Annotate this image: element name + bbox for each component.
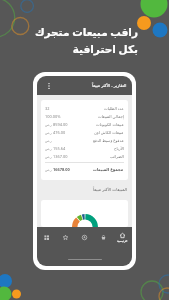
staticText: إجمالي المبيعات — [98, 114, 124, 119]
button[interactable]: ر.س — [45, 152, 124, 160]
staticText: ر.س — [45, 154, 52, 159]
staticText: عدد الطلبات — [104, 106, 124, 111]
button[interactable]: ر.س — [45, 128, 124, 136]
button[interactable]: ر.س — [45, 165, 124, 173]
staticText: مبيعات الكاش اون — [94, 130, 124, 135]
button[interactable]: Cart — [94, 227, 113, 247]
staticText: 100.00% — [45, 114, 61, 119]
button[interactable]: More options — [44, 81, 54, 91]
button[interactable]: Favorites — [56, 227, 75, 247]
staticText: الضرائب — [110, 154, 124, 159]
staticText: مجموع المبيعات — [93, 167, 124, 172]
staticText: ر.س — [45, 122, 52, 127]
staticText: 476.00 — [53, 130, 66, 135]
button[interactable]: Apps — [37, 227, 56, 247]
button[interactable]: Account — [75, 227, 94, 247]
staticText: مدفوع وسيط الدفع — [93, 138, 124, 143]
button[interactable]: ر.س — [45, 120, 124, 128]
staticText: 32 — [45, 106, 50, 111]
staticText: بكل احترافية — [72, 42, 138, 56]
staticText: راقب مبيعات متجرك — [34, 25, 138, 39]
staticText: الرئيسية — [117, 239, 128, 242]
staticText: 16678.00 — [53, 167, 70, 172]
staticText: التقارير - الأكثر مبيعاً — [92, 83, 127, 89]
button[interactable]: ر.س — [45, 144, 124, 152]
staticText: 155.64 — [53, 146, 66, 151]
button[interactable]: 100.00% — [45, 112, 124, 120]
staticText: الأرباح — [114, 146, 124, 151]
staticText: 1367.00 — [53, 154, 68, 159]
button[interactable]: 32 — [45, 104, 124, 112]
staticText: ر.س — [45, 138, 52, 143]
staticText: ر.س — [45, 146, 52, 151]
staticText: مبيعات الكوبونات — [96, 122, 124, 127]
staticText: 8594.00 — [53, 122, 68, 127]
staticText: المبيعات الأكثر مبيعاً — [41, 187, 127, 193]
staticText: ر.س — [45, 130, 52, 135]
button[interactable]: Home — [113, 227, 132, 247]
button[interactable]: ر.س — [45, 136, 124, 144]
staticText: ر.س — [45, 167, 52, 172]
